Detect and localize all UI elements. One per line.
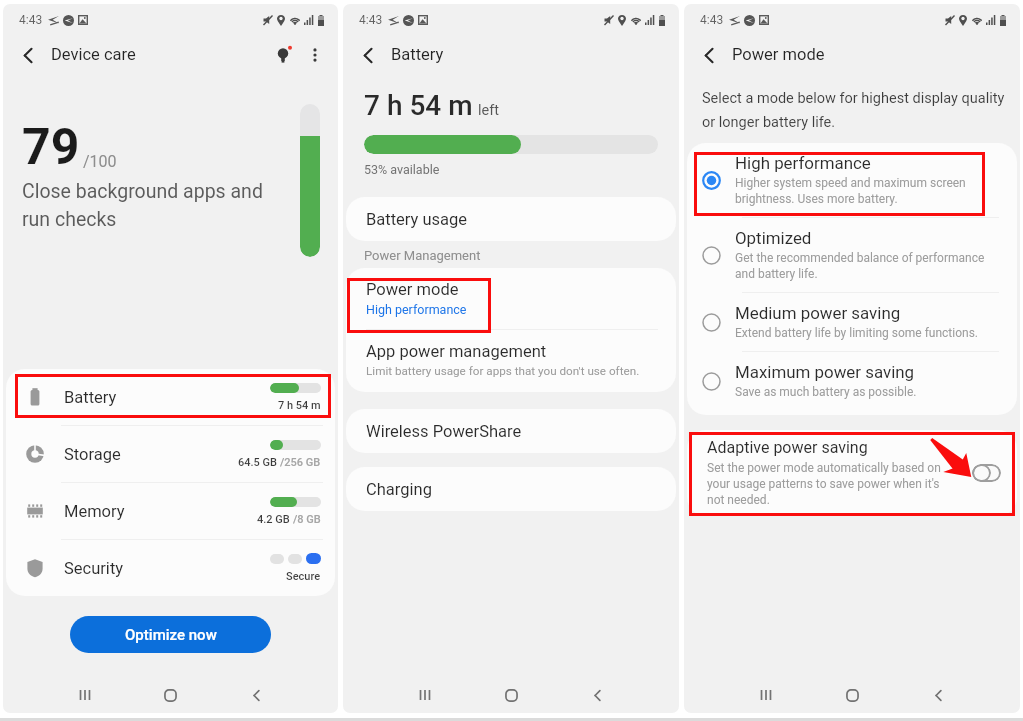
button[interactable]: Recent apps bbox=[42, 677, 127, 713]
button[interactable]: Charging bbox=[346, 467, 676, 511]
staticText: /100 bbox=[83, 152, 117, 171]
staticText: Close background apps and run checks bbox=[22, 180, 263, 231]
button[interactable]: Recent apps bbox=[723, 677, 809, 713]
staticText: left bbox=[478, 102, 499, 119]
staticText: 4.2 GB bbox=[257, 513, 293, 526]
button[interactable]: Back bbox=[16, 43, 40, 67]
staticText: Optimize now bbox=[125, 626, 217, 644]
staticText: High performance bbox=[366, 302, 467, 317]
button[interactable]: Battery bbox=[6, 369, 335, 425]
staticText: Memory bbox=[64, 502, 125, 521]
button[interactable]: Home bbox=[809, 677, 895, 713]
button[interactable]: Back bbox=[356, 43, 380, 67]
button[interactable]: Home bbox=[127, 677, 213, 713]
staticText: Battery bbox=[391, 45, 444, 64]
button[interactable]: Adaptive power saving bbox=[687, 430, 1017, 516]
staticText: Set the power mode automatically based o… bbox=[707, 461, 941, 507]
staticText: 53% available bbox=[364, 162, 440, 177]
staticText: Maximum power saving bbox=[735, 362, 915, 382]
staticText: Secure bbox=[286, 570, 321, 583]
button[interactable]: Optimized bbox=[687, 218, 1017, 292]
staticText: 4:43 bbox=[359, 13, 383, 27]
staticText: 79 bbox=[22, 118, 80, 177]
staticText: Get the recommended balance of performan… bbox=[735, 251, 985, 281]
button[interactable]: Wireless PowerShare bbox=[346, 409, 676, 453]
button[interactable]: Back bbox=[554, 677, 640, 713]
staticText: App power management bbox=[366, 342, 547, 361]
staticText: Battery usage bbox=[366, 210, 468, 229]
staticText: Limit battery usage for apps that you do… bbox=[366, 364, 640, 378]
button[interactable]: High performance bbox=[687, 143, 1017, 217]
staticText: 64.5 GB bbox=[238, 456, 280, 469]
staticText: Power Management bbox=[364, 248, 481, 263]
staticText: Battery bbox=[64, 388, 117, 407]
staticText: Security bbox=[64, 559, 124, 578]
button[interactable]: Back bbox=[697, 43, 721, 67]
staticText: Power mode bbox=[366, 280, 459, 299]
staticText: Higher system speed and maximum screen b… bbox=[735, 176, 966, 206]
staticText: Adaptive power saving bbox=[707, 438, 868, 457]
button[interactable]: Memory bbox=[6, 483, 335, 539]
staticText: Optimized bbox=[735, 228, 812, 248]
button[interactable]: Back bbox=[213, 677, 299, 713]
staticText: Device care bbox=[51, 45, 136, 64]
staticText: Charging bbox=[366, 480, 432, 499]
button[interactable]: Back bbox=[895, 677, 981, 713]
staticText: Power mode bbox=[732, 45, 825, 64]
staticText: 7 h 54 m bbox=[364, 89, 473, 122]
staticText: /256 GB bbox=[280, 456, 321, 469]
button[interactable]: Recent apps bbox=[382, 677, 468, 713]
button[interactable]: App power management bbox=[346, 330, 676, 392]
button[interactable]: Storage bbox=[6, 426, 335, 482]
staticText: Medium power saving bbox=[735, 303, 901, 323]
button[interactable]: Home bbox=[468, 677, 554, 713]
button[interactable]: Power mode bbox=[346, 268, 676, 329]
button[interactable]: More options bbox=[301, 41, 329, 69]
button[interactable]: Battery usage bbox=[346, 197, 676, 241]
staticText: 4:43 bbox=[19, 13, 43, 27]
button[interactable]: Medium power saving bbox=[687, 293, 1017, 351]
button[interactable]: Tips bbox=[270, 41, 298, 69]
staticText: Select a mode below for highest display … bbox=[702, 90, 1005, 131]
staticText: /8 GB bbox=[293, 513, 321, 526]
button[interactable]: Security bbox=[6, 540, 335, 596]
staticText: High performance bbox=[735, 153, 871, 173]
staticText: Storage bbox=[64, 445, 121, 464]
staticText: Save as much battery as possible. bbox=[735, 385, 917, 399]
button[interactable]: Maximum power saving bbox=[687, 352, 1017, 410]
staticText: Extend battery life by limiting some fun… bbox=[735, 326, 979, 340]
staticText: 4:43 bbox=[700, 13, 724, 27]
button[interactable]: Optimize now bbox=[70, 616, 271, 653]
staticText: 7 h 54 m bbox=[278, 399, 321, 412]
staticText: Wireless PowerShare bbox=[366, 422, 522, 441]
